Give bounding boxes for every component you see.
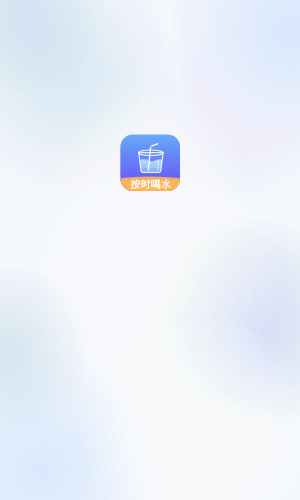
staticText: 按时喝水 bbox=[129, 178, 173, 191]
